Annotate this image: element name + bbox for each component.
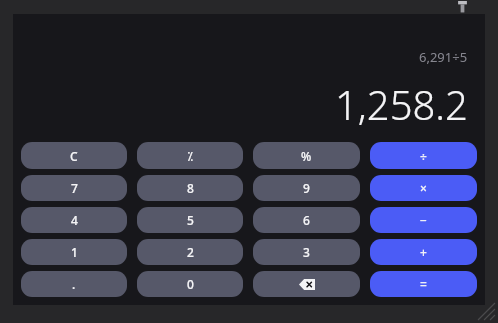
button[interactable]: Backspace [253,271,360,297]
button[interactable]: ÷ [370,142,477,169]
button[interactable]: 3 [253,239,360,265]
button[interactable]: − [370,207,477,233]
button[interactable]: Pin window on top [452,0,472,15]
staticText: 2 [187,244,194,260]
button[interactable]: × [370,175,477,201]
button[interactable]: 8 [137,175,243,201]
staticText: 0 [187,276,194,292]
staticText: 1 [71,244,78,260]
staticText: % [301,148,312,164]
staticText: 7 [71,180,78,196]
button[interactable]: 6 [253,207,360,233]
staticText: + [420,244,427,260]
staticText: × [420,180,427,196]
staticText: = [420,276,427,292]
button[interactable]: . [21,271,127,297]
button[interactable]: % [253,142,360,169]
button[interactable]: ⁒ [137,142,243,169]
staticText: 6,291÷5 [419,48,468,66]
staticText: 5 [187,212,194,228]
button[interactable]: 2 [137,239,243,265]
staticText: C [70,148,78,164]
button[interactable]: 9 [253,175,360,201]
staticText: 1,258.2 [335,77,468,131]
button[interactable]: 7 [21,175,127,201]
button[interactable]: 1 [21,239,127,265]
staticText: 3 [303,244,310,260]
button[interactable]: 0 [137,271,243,297]
staticText: ⁒ [188,148,193,164]
button[interactable]: 4 [21,207,127,233]
button[interactable]: = [370,271,477,297]
staticText: . [72,276,76,292]
staticText: 4 [71,212,78,228]
staticText: 8 [187,180,194,196]
staticText: − [420,212,427,228]
staticText: 9 [303,180,310,196]
button[interactable]: + [370,239,477,265]
button[interactable]: 5 [137,207,243,233]
button[interactable]: C [21,142,127,169]
staticText: ÷ [420,148,427,164]
staticText: 6 [303,212,310,228]
